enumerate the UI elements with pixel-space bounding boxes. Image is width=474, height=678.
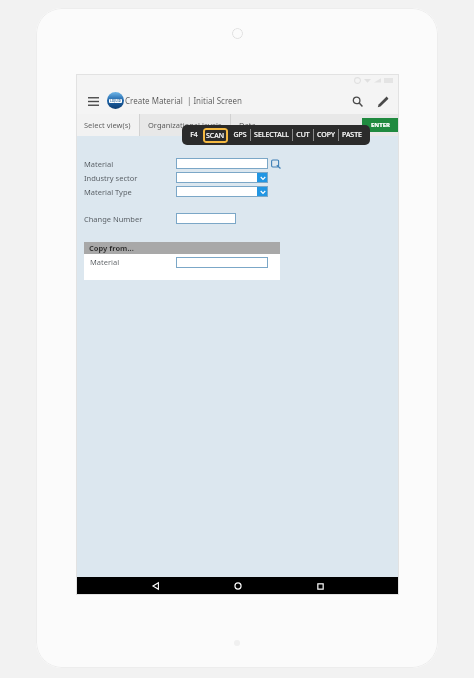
button[interactable]: COPY <box>314 125 338 145</box>
button[interactable]: Organizational levels <box>140 114 230 136</box>
button[interactable]: CUT <box>293 125 313 145</box>
staticText: SELECTALL <box>254 130 289 140</box>
staticText: COPY <box>317 130 335 140</box>
button[interactable]: SCAN <box>203 128 228 143</box>
button[interactable]: Menu <box>83 91 103 111</box>
staticText: F4 <box>190 130 198 140</box>
button[interactable]: SELECTALL <box>251 125 292 145</box>
button[interactable]: Edit <box>372 91 392 111</box>
button[interactable]: GPS <box>230 125 250 145</box>
button[interactable] <box>176 186 268 197</box>
button[interactable]: ENTER <box>362 118 398 132</box>
button[interactable]: Back <box>147 577 165 595</box>
staticText: CUT <box>296 130 310 140</box>
button[interactable] <box>176 158 268 169</box>
button[interactable] <box>176 172 268 183</box>
button[interactable]: Value help <box>271 159 281 169</box>
staticText: Change Number <box>84 214 143 224</box>
button[interactable]: PASTE <box>339 125 365 145</box>
staticText: Copy from... <box>89 243 134 253</box>
button[interactable] <box>176 257 268 268</box>
staticText: Organizational levels <box>148 120 222 130</box>
button[interactable]: Select view(s) <box>76 114 139 136</box>
button[interactable]: Copy from... <box>84 242 280 254</box>
staticText: Select view(s) <box>84 120 131 130</box>
staticText: Create Material | Initial Screen <box>125 95 243 106</box>
button[interactable]: Recent apps <box>311 577 329 595</box>
staticText: Data <box>239 120 256 130</box>
button[interactable]: F4 <box>187 125 201 145</box>
staticText: Material <box>90 257 120 267</box>
staticText: PASTE <box>342 130 362 140</box>
staticText: LIQUID <box>110 99 121 103</box>
staticText: GPS <box>233 130 247 140</box>
staticText: Material <box>84 159 114 169</box>
staticText: Industry sector <box>84 173 138 183</box>
staticText: ENTER <box>371 121 390 129</box>
staticText: Material Type <box>84 187 132 197</box>
button[interactable]: Home <box>229 577 247 595</box>
button[interactable]: Data <box>231 114 264 136</box>
button[interactable] <box>176 213 236 224</box>
staticText: SCAN <box>206 131 225 141</box>
button[interactable]: Search <box>347 91 367 111</box>
